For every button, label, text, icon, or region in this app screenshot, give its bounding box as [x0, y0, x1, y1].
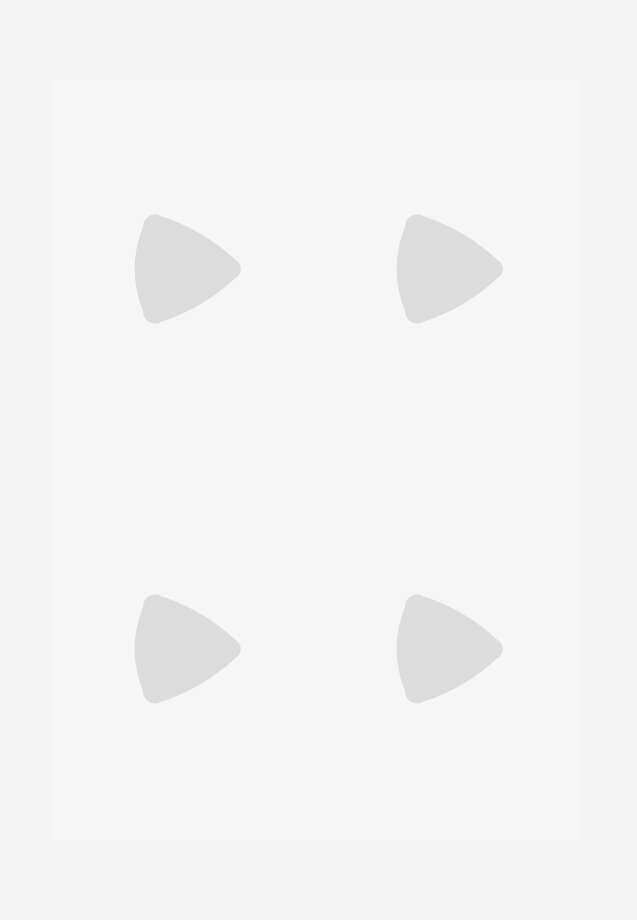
button[interactable]: Play video [52, 460, 316, 840]
button[interactable]: Play video [316, 80, 580, 460]
button[interactable]: Play video [316, 460, 580, 840]
button[interactable]: Play video [52, 80, 316, 460]
